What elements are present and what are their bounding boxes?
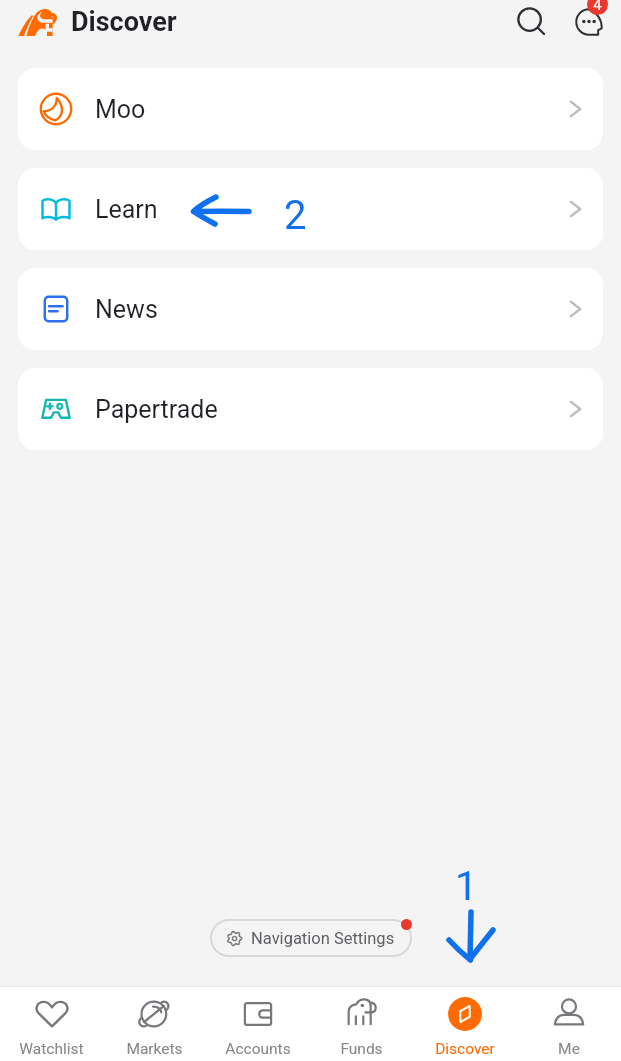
staticText: Learn [95,195,158,224]
staticText: Papertrade [95,395,218,424]
button[interactable]: Moo [18,68,603,150]
staticText: News [95,295,158,324]
button[interactable]: Messages, 4 unread [567,0,611,44]
button[interactable]: Papertrade [18,368,603,450]
staticText: 2 [284,192,307,239]
staticText: Accounts [225,1040,291,1058]
button[interactable]: News [18,268,603,350]
button[interactable]: Navigation Settings [210,919,412,957]
staticText: 1 [455,863,478,910]
button[interactable]: Funds [309,987,413,1061]
button[interactable]: Search [510,0,554,44]
staticText: Moo [95,95,146,124]
button[interactable]: Accounts [206,987,309,1061]
staticText: Funds [340,1040,383,1058]
button[interactable]: Watchlist [0,987,103,1061]
button[interactable]: Discover [413,987,517,1061]
staticText: Discover [71,6,177,38]
staticText: 4 [593,0,602,14]
staticText: Navigation Settings [251,929,395,948]
staticText: Discover [435,1040,495,1058]
button[interactable]: Markets [103,987,206,1061]
button[interactable]: Learn [18,168,603,250]
staticText: Me [558,1040,580,1058]
staticText: Watchlist [19,1040,84,1058]
staticText: Markets [126,1040,183,1058]
button[interactable]: Me [517,987,621,1061]
